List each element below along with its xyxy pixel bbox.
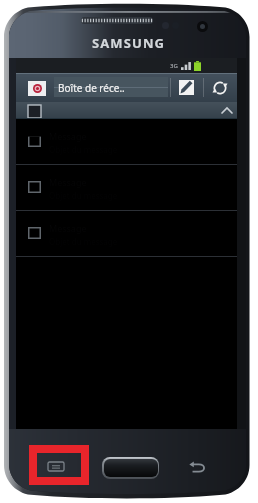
staticText: 3G [170, 62, 178, 70]
button[interactable]: Message [16, 119, 237, 165]
button[interactable]: Menu [48, 462, 64, 471]
button[interactable]: Home [102, 457, 159, 479]
staticText: Boîte de réce.. [58, 81, 125, 95]
button[interactable]: Back [189, 461, 205, 473]
button[interactable]: Message [16, 165, 237, 211]
button[interactable] [16, 102, 237, 119]
button[interactable]: Compose [173, 75, 199, 100]
staticText: SAMSUNG [92, 34, 166, 52]
button[interactable]: Refresh [207, 75, 233, 100]
button[interactable]: Boîte de réce.. [54, 77, 168, 98]
button[interactable]: Message [16, 211, 237, 257]
